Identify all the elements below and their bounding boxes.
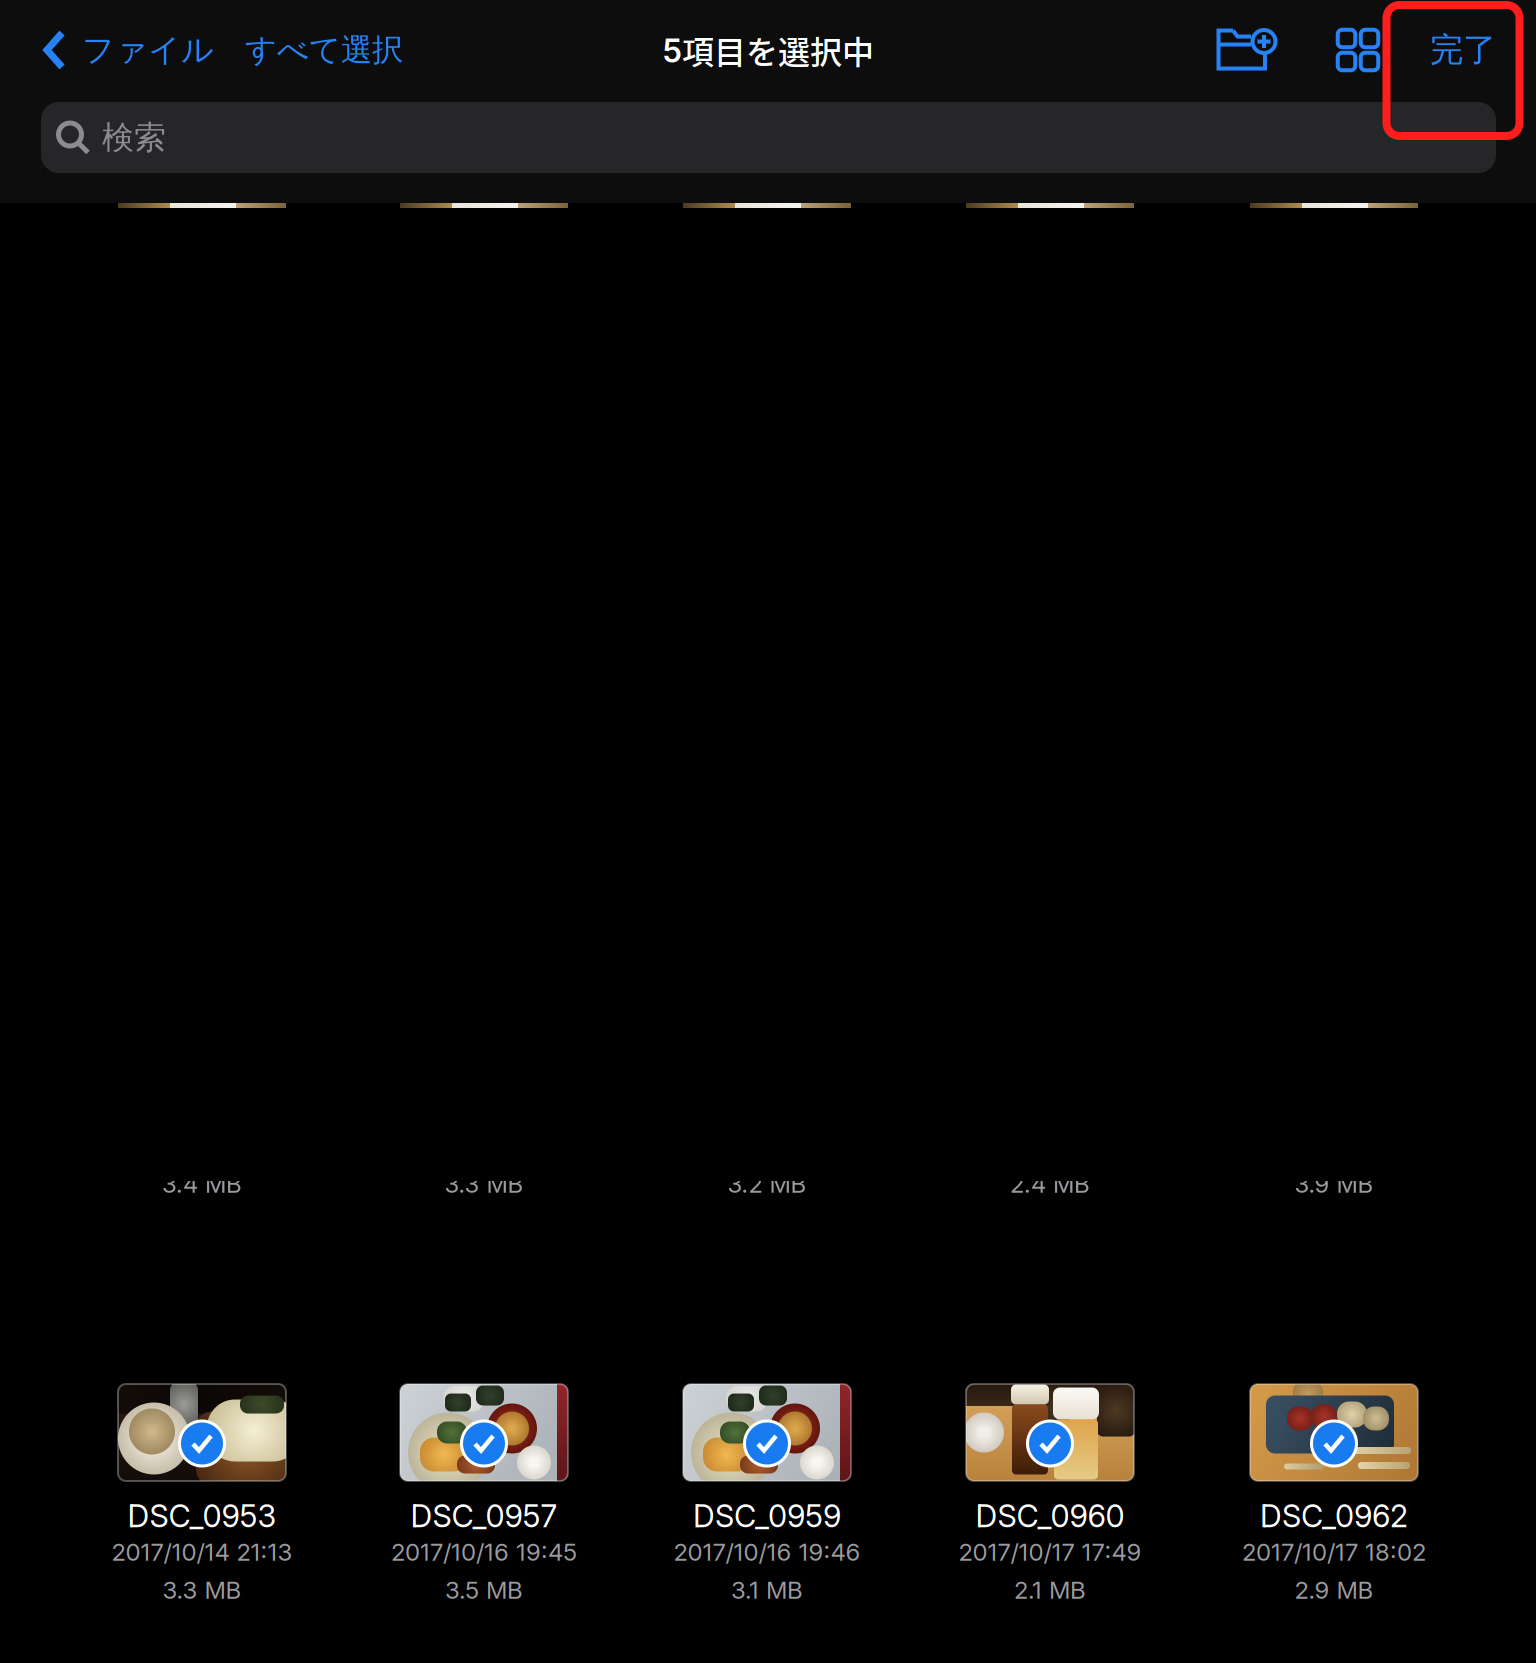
staticText: 3.9 MB [1294,1169,1373,1198]
staticText: 2.4 MB [1010,1169,1090,1198]
staticText: 2017/10/16 19:45 [391,1537,577,1566]
staticText: DSC_0959 [693,1497,841,1534]
button[interactable]: 検索 [41,102,1496,173]
staticText: 3.5 MB [445,1575,523,1604]
staticText: 5項目を選択中 [662,27,874,73]
button[interactable]: DSC_0962 [1192,1384,1475,1624]
staticText: ファイル [82,30,214,70]
staticText: 3.2 MB [727,1169,806,1198]
staticText: 2017/10/14 21:13 [111,1537,292,1566]
button[interactable]: DSC_0957 [342,1384,625,1624]
button[interactable]: DSC_0960 [908,1384,1191,1624]
staticText: 3.3 MB [444,1169,523,1198]
button[interactable]: DSC_0959 [625,1384,908,1624]
staticText: DSC_0960 [975,1497,1124,1534]
staticText: 3.1 MB [731,1575,803,1604]
staticText: DSC_0957 [410,1497,557,1534]
button[interactable]: 完了 [1393,0,1533,100]
button[interactable]: ファイル [0,0,226,100]
button[interactable]: すべて選択 [226,0,422,100]
staticText: DSC_0953 [127,1497,276,1534]
staticText: 2.1 MB [1014,1575,1086,1604]
staticText: 2017/10/17 17:49 [958,1537,1141,1566]
button[interactable]: 新規フォルダ [1198,0,1294,100]
button[interactable]: DSC_0953 [60,1384,343,1624]
staticText: 2017/10/16 19:46 [673,1537,860,1566]
staticText: 検索 [102,117,166,158]
staticText: 2017/10/17 18:02 [1242,1537,1426,1566]
staticText: 完了 [1430,29,1496,71]
staticText: DSC_0962 [1260,1497,1408,1534]
staticText: 3.3 MB [162,1575,241,1604]
staticText: 2.9 MB [1294,1575,1373,1604]
staticText: すべて選択 [245,30,403,70]
staticText: 3.4 MB [162,1169,242,1198]
button[interactable]: 表示形式 [1310,0,1406,100]
